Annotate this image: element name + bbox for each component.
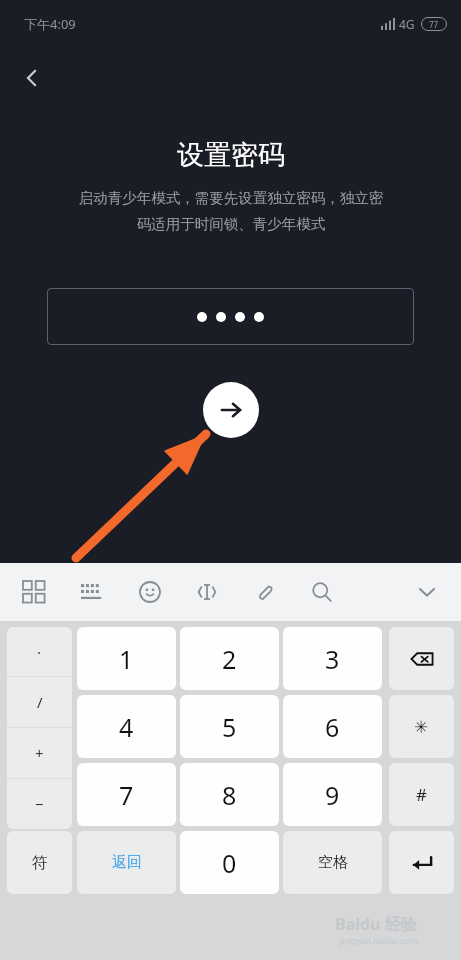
staticText: # xyxy=(416,783,427,806)
button[interactable]: 6 xyxy=(283,695,382,758)
button[interactable]: Back xyxy=(8,54,56,102)
staticText: 6 xyxy=(325,710,340,744)
staticText: 下午4:09 xyxy=(24,15,76,33)
button[interactable]: Search xyxy=(300,570,344,614)
staticText: 2 xyxy=(222,642,237,676)
staticText: + xyxy=(35,743,44,763)
button[interactable]: 符 xyxy=(7,831,72,894)
button[interactable]: 5 xyxy=(180,695,279,758)
staticText: 启动青少年模式，需要先设置独立密码，独立密 码适用于时间锁、青少年模式 xyxy=(51,189,411,234)
button[interactable]: 2 xyxy=(180,627,279,690)
staticText: 设置密码 xyxy=(177,138,285,172)
staticText: Baidu 经验 xyxy=(335,913,417,935)
button[interactable]: 0 xyxy=(180,831,279,894)
button[interactable]: · xyxy=(7,627,72,676)
button[interactable]: Emoji xyxy=(128,570,172,614)
button[interactable]: Cursor xyxy=(185,570,229,614)
staticText: jingyan.baidu.com xyxy=(340,934,418,946)
staticText: 空格 xyxy=(318,853,348,872)
staticText: 4G xyxy=(399,16,415,32)
button[interactable]: Hide keyboard xyxy=(405,570,449,614)
button[interactable]: + xyxy=(7,728,72,778)
staticText: 0 xyxy=(222,846,237,880)
button[interactable]: 8 xyxy=(180,763,279,826)
staticText: 4 xyxy=(119,710,134,744)
button[interactable]: ✳ xyxy=(389,695,454,758)
button[interactable]: Grid xyxy=(12,570,56,614)
button[interactable]: Enter xyxy=(389,831,454,894)
staticText: 5 xyxy=(222,710,237,744)
staticText: 符 xyxy=(32,853,48,873)
button[interactable]: Keyboard xyxy=(70,570,114,614)
staticText: ✳ xyxy=(414,717,429,737)
staticText: / xyxy=(37,692,43,712)
button[interactable] xyxy=(47,288,414,345)
staticText: − xyxy=(35,794,44,814)
button[interactable]: # xyxy=(389,763,454,826)
button[interactable]: 7 xyxy=(77,763,176,826)
button[interactable]: Clipboard xyxy=(243,570,287,614)
button[interactable]: 返回 xyxy=(77,831,176,894)
staticText: 9 xyxy=(325,778,340,812)
button[interactable]: − xyxy=(7,779,72,829)
button[interactable]: 9 xyxy=(283,763,382,826)
button[interactable]: 4 xyxy=(77,695,176,758)
button[interactable]: 空格 xyxy=(283,831,382,894)
staticText: 8 xyxy=(222,778,237,812)
button[interactable]: 3 xyxy=(283,627,382,690)
staticText: 77 xyxy=(429,19,439,30)
staticText: 返回 xyxy=(112,853,142,872)
button[interactable]: 1 xyxy=(77,627,176,690)
staticText: · xyxy=(37,642,42,662)
staticText: 3 xyxy=(325,642,340,676)
button[interactable]: / xyxy=(7,677,72,727)
staticText: 7 xyxy=(119,778,134,812)
button[interactable]: Submit xyxy=(203,382,259,438)
staticText: 1 xyxy=(119,642,134,676)
button[interactable]: Backspace xyxy=(389,627,454,690)
